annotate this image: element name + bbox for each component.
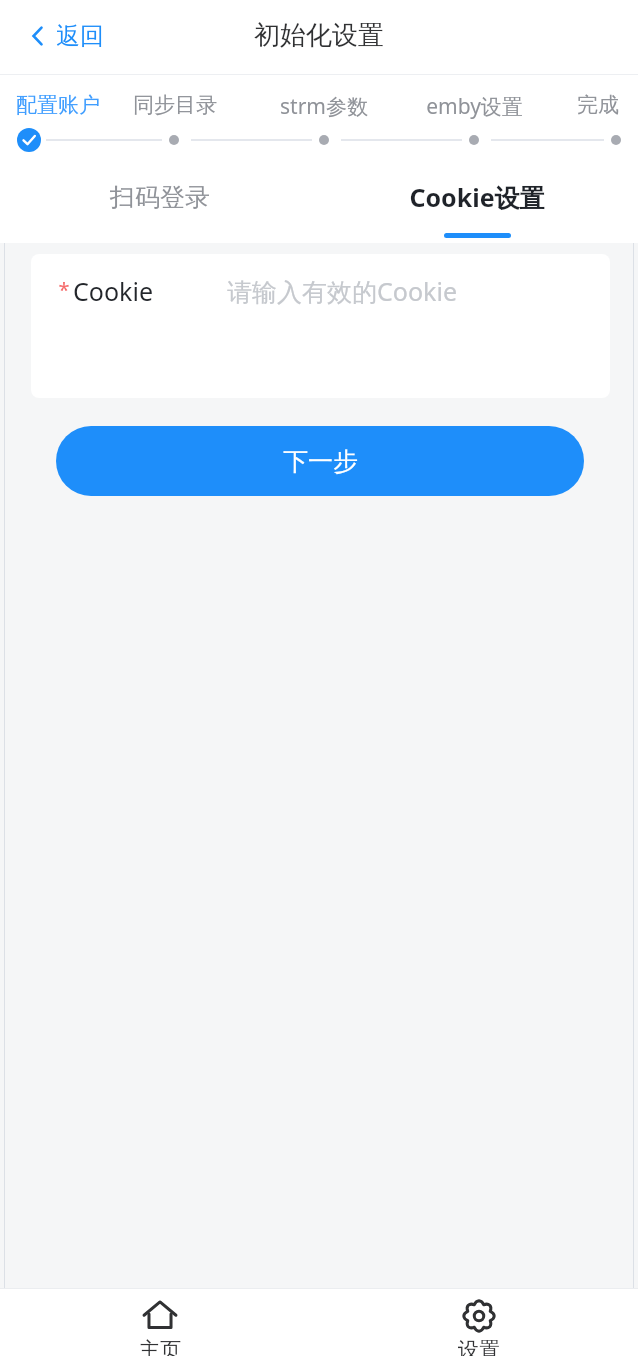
staticText: 同步目录: [133, 92, 217, 118]
button[interactable]: 配置账户: [0, 92, 128, 118]
button[interactable]: emby设置: [404, 92, 544, 121]
staticText: 返回: [56, 21, 104, 51]
staticText: strm参数: [280, 92, 368, 121]
button[interactable]: 设置: [399, 1288, 559, 1356]
staticText: 扫码登录: [110, 182, 210, 213]
staticText: 请输入有效的Cookie: [227, 274, 457, 308]
staticText: 配置账户: [16, 92, 100, 118]
staticText: 完成: [577, 92, 619, 118]
button[interactable]: *: [31, 254, 610, 398]
button[interactable]: 下一步: [56, 426, 584, 496]
staticText: *: [58, 276, 70, 303]
staticText: 初始化设置: [254, 19, 384, 52]
staticText: 设置: [458, 1337, 500, 1356]
staticText: emby设置: [426, 92, 523, 121]
button[interactable]: 扫码登录: [80, 163, 240, 243]
button[interactable]: Cookie设置: [397, 163, 557, 243]
button[interactable]: 主页: [80, 1288, 240, 1356]
staticText: 主页: [139, 1337, 181, 1356]
button[interactable]: 同步目录: [105, 92, 245, 118]
button[interactable]: 返回: [22, 15, 112, 57]
staticText: Cookie: [73, 274, 153, 308]
staticText: 下一步: [283, 446, 358, 477]
button[interactable]: 完成: [528, 92, 638, 118]
staticText: Cookie设置: [409, 180, 545, 214]
button[interactable]: strm参数: [254, 92, 394, 121]
